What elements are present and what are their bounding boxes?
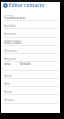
button[interactable]: casa (1, 62, 17, 71)
button[interactable]: Empresa (1, 54, 60, 62)
staticText: Nombre (4, 13, 14, 16)
button[interactable]: Grupos (1, 95, 60, 104)
staticText: Editar contacto (9, 2, 45, 9)
button[interactable]: Notas (1, 87, 60, 95)
staticText: Email (4, 74, 12, 78)
staticText: Detalle (20, 62, 31, 66)
button[interactable]: Nombre (1, 13, 60, 21)
button[interactable]: Web (1, 79, 60, 87)
staticText: Empresa (4, 57, 16, 61)
button[interactable]: Apellidos (1, 21, 60, 29)
staticText: Grupos (4, 98, 14, 102)
staticText: Combinacion (4, 15, 59, 20)
button[interactable]: Detalle (17, 62, 33, 71)
button[interactable]: Back (1, 2, 9, 9)
staticText: Empresa (4, 32, 16, 36)
button[interactable]: Email (1, 71, 60, 79)
button[interactable]: Direccion (1, 46, 60, 54)
button[interactable]: Telefono movil (1, 38, 60, 46)
staticText: Apellidos (4, 24, 17, 28)
staticText: casa (4, 62, 11, 66)
staticText: Telefono movil (4, 38, 21, 41)
staticText: Notas (4, 90, 12, 94)
staticText: Web (4, 82, 11, 86)
button[interactable]: Empresa (1, 29, 60, 38)
staticText: 600123456 (4, 40, 59, 45)
staticText: Direccion (4, 49, 17, 53)
